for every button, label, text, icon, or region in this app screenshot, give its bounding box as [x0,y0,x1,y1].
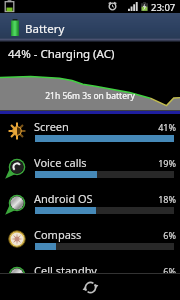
staticText: 41% [0,121,176,133]
staticText: 6% [0,229,176,241]
button[interactable]: Refresh [77,274,103,300]
staticText: Voice calls [34,155,87,170]
button[interactable]: Android OS [0,186,180,222]
button[interactable]: Battery [0,13,180,42]
button[interactable]: Compass [0,222,180,258]
staticText: Screen [34,119,69,134]
button[interactable]: Screen [0,114,180,150]
staticText: Cell standby [34,263,97,278]
staticText: 23:07 [151,1,176,14]
staticText: 21h 56m 3s on battery [0,90,180,102]
staticText: 18% [0,193,176,205]
staticText: 19% [0,157,176,169]
staticText: Android OS [34,191,93,206]
button[interactable]: Voice calls [0,150,180,186]
staticText: 6% [0,265,176,277]
staticText: Compass [34,227,82,242]
staticText: Battery [25,21,65,37]
button[interactable]: Cell standby [0,258,180,294]
staticText: 44% - Charging (AC) [8,46,115,62]
